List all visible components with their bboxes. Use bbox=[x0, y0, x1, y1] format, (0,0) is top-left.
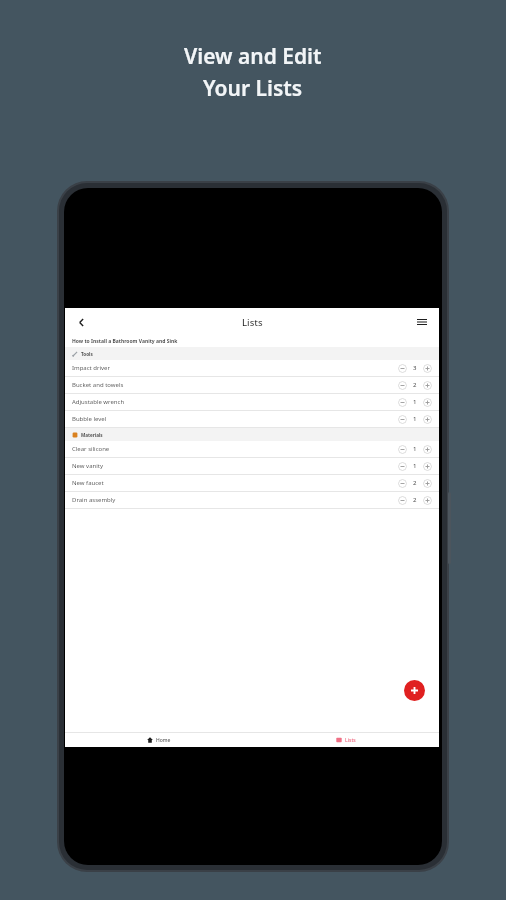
staticText: View and Edit bbox=[184, 42, 322, 71]
staticText: New faucet bbox=[72, 479, 104, 487]
staticText: Your Lists bbox=[203, 74, 303, 103]
staticText: 2 bbox=[413, 496, 417, 504]
button[interactable]: Increase bbox=[423, 462, 432, 471]
staticText: 1 bbox=[413, 415, 417, 423]
button[interactable]: Bubble level bbox=[72, 411, 432, 427]
staticText: 2 bbox=[413, 381, 417, 389]
button[interactable]: Impact driver bbox=[72, 360, 432, 376]
button[interactable]: Add item bbox=[404, 680, 425, 701]
staticText: Clear silicone bbox=[72, 445, 110, 453]
button[interactable]: Decrease bbox=[398, 496, 407, 505]
staticText: Lists bbox=[242, 316, 263, 329]
staticText: Home bbox=[156, 737, 171, 744]
staticText: Lists bbox=[345, 737, 356, 744]
staticText: Bucket and towels bbox=[72, 381, 124, 389]
button[interactable]: Clear silicone bbox=[72, 441, 432, 457]
button[interactable]: New vanity bbox=[72, 458, 432, 474]
button[interactable]: Back bbox=[72, 313, 90, 331]
button[interactable]: Menu bbox=[413, 313, 431, 331]
button[interactable]: Increase bbox=[423, 496, 432, 505]
staticText: Bubble level bbox=[72, 415, 107, 423]
staticText: Adjustable wrench bbox=[72, 398, 125, 406]
staticText: 1 bbox=[413, 445, 417, 453]
button[interactable]: Tools bbox=[72, 347, 439, 360]
button[interactable]: Decrease bbox=[398, 445, 407, 454]
button[interactable]: Decrease bbox=[398, 479, 407, 488]
button[interactable]: Increase bbox=[423, 445, 432, 454]
staticText: Materials bbox=[81, 432, 103, 438]
button[interactable]: New faucet bbox=[72, 475, 432, 491]
button[interactable]: Increase bbox=[423, 381, 432, 390]
button[interactable]: Decrease bbox=[398, 364, 407, 373]
button[interactable]: Decrease bbox=[398, 462, 407, 471]
staticText: Drain assembly bbox=[72, 496, 116, 504]
button[interactable]: Adjustable wrench bbox=[72, 394, 432, 410]
button[interactable]: Increase bbox=[423, 415, 432, 424]
button[interactable]: Decrease bbox=[398, 415, 407, 424]
staticText: How to Install a Bathroom Vanity and Sin… bbox=[72, 338, 178, 345]
button[interactable]: Decrease bbox=[398, 398, 407, 407]
staticText: Tools bbox=[81, 351, 93, 357]
staticText: 1 bbox=[413, 462, 417, 470]
button[interactable]: Bucket and towels bbox=[72, 377, 432, 393]
button[interactable]: Increase bbox=[423, 479, 432, 488]
button[interactable]: Increase bbox=[423, 364, 432, 373]
button[interactable]: How to Install a Bathroom Vanity and Sin… bbox=[65, 336, 439, 347]
staticText: 3 bbox=[413, 364, 417, 372]
button[interactable]: Home bbox=[65, 733, 252, 747]
button[interactable]: Materials bbox=[72, 428, 439, 441]
button[interactable]: Increase bbox=[423, 398, 432, 407]
staticText: 1 bbox=[413, 398, 417, 406]
staticText: Impact driver bbox=[72, 364, 110, 372]
staticText: 2 bbox=[413, 479, 417, 487]
button[interactable]: Lists bbox=[252, 733, 439, 747]
button[interactable]: Decrease bbox=[398, 381, 407, 390]
button[interactable]: Drain assembly bbox=[72, 492, 432, 508]
staticText: New vanity bbox=[72, 462, 103, 470]
